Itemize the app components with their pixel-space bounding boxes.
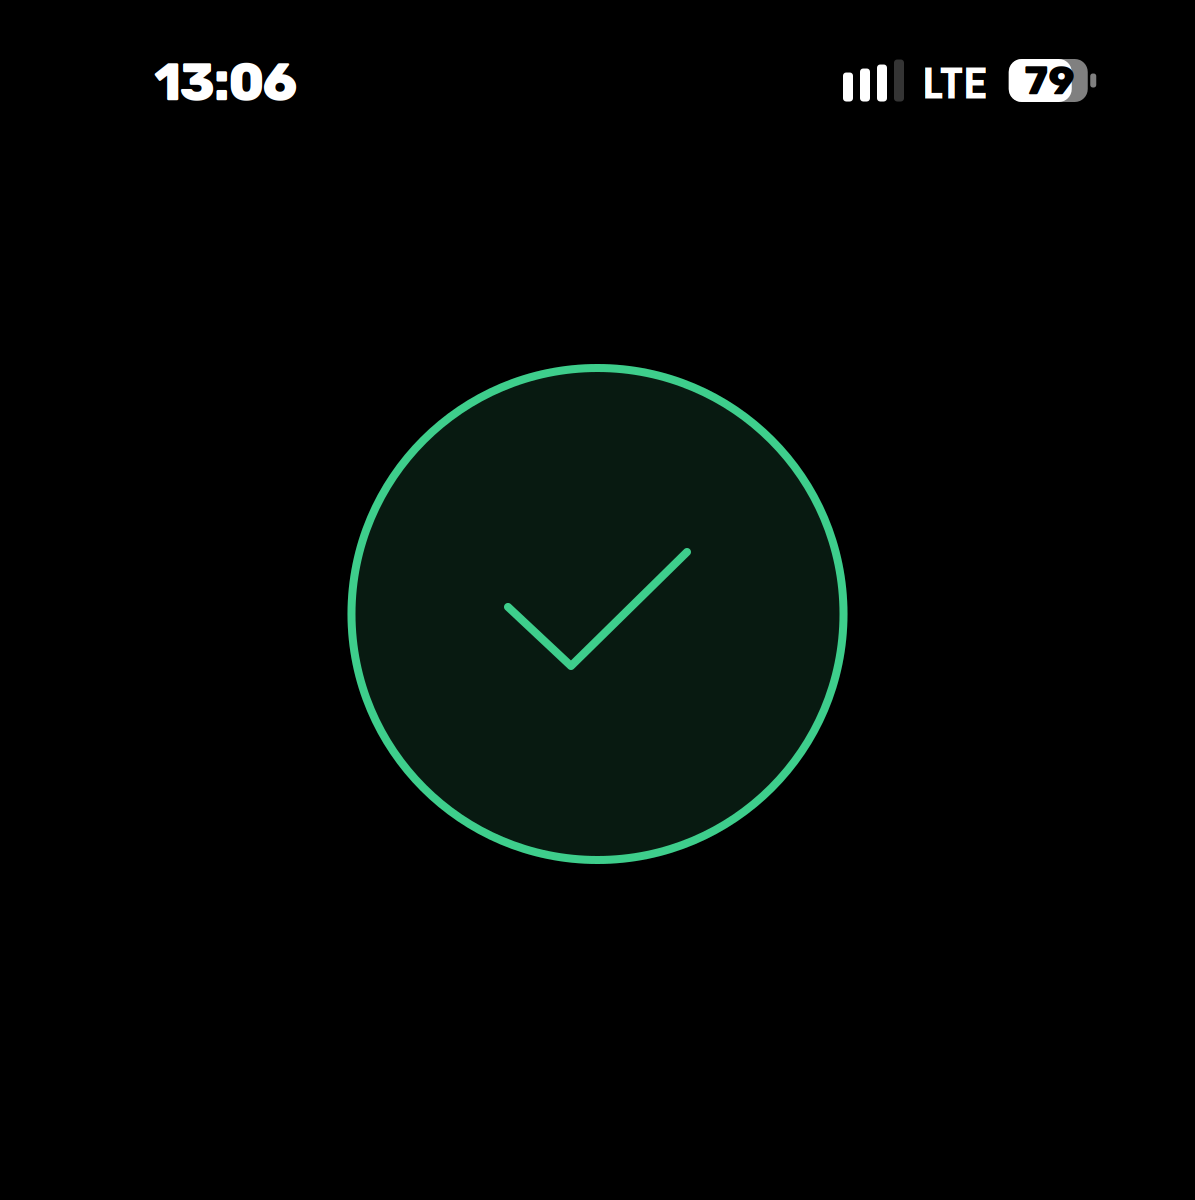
button[interactable]: Success [347, 364, 847, 864]
staticText: 13:06 [154, 52, 298, 113]
staticText: 79 [1024, 57, 1074, 104]
staticText: LTE [922, 52, 988, 111]
